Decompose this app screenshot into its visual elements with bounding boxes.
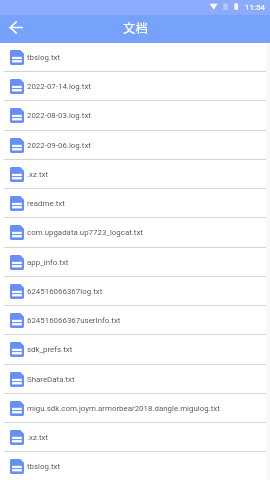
button[interactable]: readme.txt [0,189,270,217]
staticText: com.upgadata.up7723_logcat.txt [27,228,143,237]
button[interactable]: Back [4,15,28,39]
button[interactable]: tbslog.txt [0,43,270,71]
staticText: 2022-07-14.log.txt [27,82,91,91]
staticText: migu.sdk.com.joym.armorbear2018.dangle.m… [27,404,220,413]
staticText: app_info.txt [27,258,69,267]
staticText: readme.txt [27,199,65,208]
button[interactable]: com.upgadata.up7723_logcat.txt [0,218,270,247]
staticText: 2022-09-06.log.txt [27,141,91,150]
button[interactable]: 2022-07-14.log.txt [0,72,270,100]
button[interactable]: ShareData.txt [0,365,270,393]
button[interactable]: 2022-08-03.log.txt [0,101,270,130]
staticText: tbslog.txt [27,462,61,471]
button[interactable]: app_info.txt [0,248,270,276]
staticText: .xz.txt [27,170,49,179]
staticText: 624516066367log.txt [27,287,103,296]
button[interactable]: tbslog.txt [0,452,270,480]
staticText: 文档 [123,19,148,37]
staticText: .xz.txt [27,433,49,442]
button[interactable]: sdk_prefs.txt [0,335,270,364]
button[interactable]: 2022-09-06.log.txt [0,131,270,159]
staticText: 11:54 [245,3,265,12]
button[interactable]: 624516066367userInfo.txt [0,306,270,334]
staticText: 2022-08-03.log.txt [27,111,91,120]
staticText: sdk_prefs.txt [27,345,73,354]
staticText: 624516066367userInfo.txt [27,316,121,325]
button[interactable]: .xz.txt [0,423,270,451]
staticText: tbslog.txt [27,53,61,62]
staticText: ShareData.txt [27,375,75,384]
button[interactable]: migu.sdk.com.joym.armorbear2018.dangle.m… [0,394,270,422]
button[interactable]: 624516066367log.txt [0,277,270,305]
button[interactable]: .xz.txt [0,160,270,188]
